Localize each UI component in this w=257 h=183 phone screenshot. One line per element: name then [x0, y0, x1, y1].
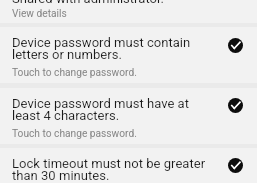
button[interactable]: Lock timeout must not be greater than 30… [0, 148, 257, 183]
staticText: View details [12, 8, 67, 20]
staticText: Touch to change password. [12, 128, 137, 140]
other: Policy satisfied [228, 38, 243, 53]
button[interactable]: Policy satisfied [228, 158, 243, 173]
staticText: Device password must have at least 4 cha… [12, 96, 189, 124]
button[interactable]: Device password must have at least 4 cha… [0, 88, 257, 144]
other: Policy satisfied [228, 158, 243, 173]
other: Policy satisfied [228, 98, 243, 113]
staticText: Touch to change password. [12, 67, 137, 79]
button[interactable]: Policy satisfied [228, 38, 243, 53]
button[interactable]: Device password must contain letters or … [0, 27, 257, 83]
button[interactable]: Policy satisfied [228, 98, 243, 113]
staticText: Device password must contain letters or … [12, 35, 191, 63]
staticText: Shared with administrator. [12, 0, 165, 6]
button[interactable]: Shared with administrator. [0, 0, 257, 23]
staticText: Lock timeout must not be greater than 30… [12, 156, 206, 183]
